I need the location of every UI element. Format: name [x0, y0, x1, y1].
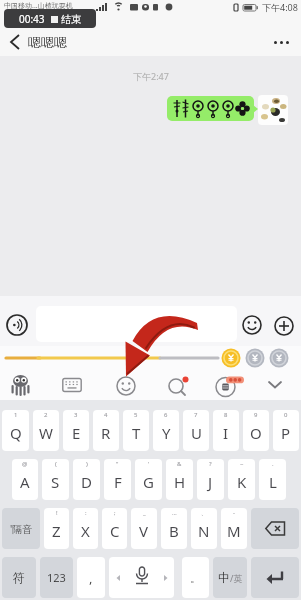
button[interactable]: 123	[40, 557, 73, 598]
button[interactable]: 00:43	[4, 9, 96, 28]
button[interactable]: 9	[243, 410, 269, 451]
staticText: R	[101, 423, 111, 443]
staticText: :	[85, 509, 87, 517]
button[interactable]	[251, 508, 299, 549]
staticText: W	[39, 423, 53, 443]
button[interactable]	[214, 372, 246, 400]
staticText: Q	[10, 423, 22, 443]
button[interactable]	[109, 557, 174, 598]
staticText: B	[169, 521, 179, 541]
staticText: D	[81, 472, 92, 492]
button[interactable]: 符	[2, 557, 36, 598]
button[interactable]: _	[131, 508, 157, 549]
button[interactable]: 0	[273, 410, 299, 451]
button[interactable]: @	[12, 459, 38, 500]
staticText: (	[55, 460, 57, 468]
staticText: .	[272, 460, 274, 468]
button[interactable]: -	[221, 508, 247, 549]
button[interactable]: :	[73, 508, 98, 549]
button[interactable]: (	[42, 459, 69, 500]
staticText: M	[227, 521, 241, 541]
button[interactable]	[36, 306, 237, 342]
button[interactable]: 3	[63, 410, 89, 451]
button[interactable]: 2	[33, 410, 59, 451]
staticText: N	[198, 521, 210, 541]
staticText: ~	[240, 460, 244, 468]
staticText: L	[269, 472, 277, 492]
button[interactable]	[258, 95, 288, 125]
staticText: "	[116, 460, 119, 468]
staticText: -	[233, 509, 235, 517]
button[interactable]: ;	[102, 508, 127, 549]
staticText: 嗯嗯嗯	[28, 34, 67, 50]
button[interactable]: 、	[191, 508, 217, 549]
staticText: Y	[162, 423, 171, 443]
staticText: 符	[13, 570, 25, 585]
staticText: )	[86, 460, 88, 468]
button[interactable]: 4	[93, 410, 119, 451]
staticText: 中国移动...山楂玩耍机	[4, 1, 73, 11]
staticText: 00:43	[19, 12, 45, 26]
button[interactable]: 8	[213, 410, 239, 451]
staticText: 结束	[61, 13, 81, 26]
staticText: 下午4:08	[262, 1, 298, 13]
staticText: G	[143, 472, 154, 492]
button[interactable]	[9, 374, 32, 397]
staticText: X	[81, 521, 90, 541]
staticText: 9	[254, 411, 258, 419]
button[interactable]	[274, 316, 294, 336]
staticText: I	[223, 423, 229, 443]
button[interactable]	[167, 376, 189, 398]
staticText: 6	[164, 411, 168, 419]
button[interactable]	[266, 380, 284, 390]
button[interactable]: 中	[213, 557, 247, 598]
button[interactable]: 。	[182, 557, 209, 598]
button[interactable]	[116, 376, 136, 396]
button[interactable]	[274, 41, 289, 44]
staticText: U	[191, 423, 202, 443]
staticText: J	[208, 472, 213, 492]
button[interactable]: ~	[228, 459, 255, 500]
staticText: '隔音	[10, 522, 33, 536]
staticText: 8	[224, 411, 228, 419]
button[interactable]: !	[44, 508, 69, 549]
button[interactable]: ?	[197, 459, 224, 500]
button[interactable]	[242, 315, 262, 335]
button[interactable]	[6, 314, 28, 336]
staticText: Z	[52, 521, 61, 541]
staticText: 3	[74, 411, 78, 419]
staticText: K	[237, 472, 247, 492]
staticText: ;	[114, 509, 116, 517]
staticText: /英	[230, 572, 243, 584]
staticText: E	[72, 423, 81, 443]
staticText: 、	[201, 509, 207, 517]
button[interactable]: ,	[77, 557, 105, 598]
button[interactable]: 5	[123, 410, 149, 451]
button[interactable]: '	[135, 459, 162, 500]
button[interactable]	[251, 557, 299, 598]
button[interactable]	[167, 96, 254, 121]
button[interactable]	[62, 377, 82, 393]
button[interactable]: 7	[183, 410, 209, 451]
staticText: 0	[284, 411, 288, 419]
staticText: !	[56, 509, 58, 517]
staticText: 2	[44, 411, 48, 419]
button[interactable]: )	[73, 459, 100, 500]
button[interactable]: …	[161, 508, 187, 549]
staticText: C	[110, 521, 120, 541]
button[interactable]: .	[259, 459, 286, 500]
staticText: F	[114, 472, 122, 492]
button[interactable]: '隔音	[2, 508, 40, 549]
staticText: …	[172, 509, 177, 517]
button[interactable]: "	[104, 459, 131, 500]
staticText: 1	[14, 411, 18, 419]
staticText: H	[174, 472, 186, 492]
button[interactable]: 1	[2, 410, 29, 451]
button[interactable]: &	[166, 459, 193, 500]
staticText: ?	[209, 460, 212, 468]
button[interactable]: 6	[153, 410, 179, 451]
staticText: 5	[134, 411, 138, 419]
staticText: P	[281, 423, 291, 443]
button[interactable]	[10, 35, 19, 49]
staticText: 中	[218, 570, 230, 585]
